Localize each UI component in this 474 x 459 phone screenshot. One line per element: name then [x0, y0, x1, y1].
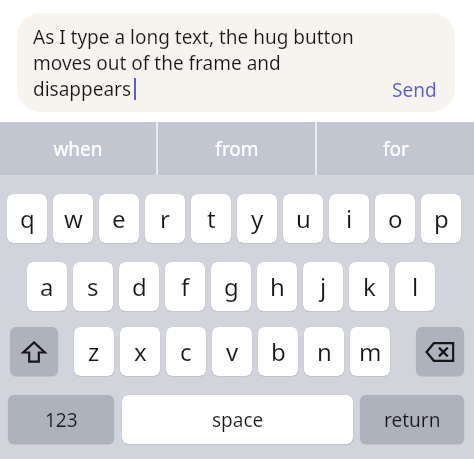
- staticText: f: [181, 270, 190, 303]
- button[interactable]: x: [120, 327, 160, 376]
- staticText: n: [317, 335, 332, 368]
- button[interactable]: l: [395, 262, 435, 311]
- button[interactable]: a: [27, 262, 67, 311]
- staticText: Send: [392, 77, 437, 103]
- button[interactable]: k: [349, 262, 389, 311]
- button[interactable]: i: [329, 194, 369, 243]
- button[interactable]: g: [211, 262, 251, 311]
- staticText: x: [134, 335, 147, 368]
- staticText: g: [224, 270, 239, 303]
- staticText: w: [64, 202, 83, 235]
- staticText: m: [359, 335, 382, 368]
- button[interactable]: d: [119, 262, 159, 311]
- staticText: a: [40, 270, 54, 303]
- staticText: o: [388, 202, 403, 235]
- staticText: l: [412, 270, 419, 303]
- button[interactable]: space: [122, 395, 353, 444]
- staticText: t: [207, 202, 216, 235]
- staticText: As I type a long text, the hug button: [33, 24, 354, 50]
- staticText: r: [160, 202, 170, 235]
- button[interactable]: when: [0, 122, 156, 175]
- button[interactable]: 123: [8, 395, 114, 444]
- button[interactable]: m: [350, 327, 390, 376]
- staticText: s: [87, 270, 99, 303]
- button[interactable]: n: [304, 327, 344, 376]
- button[interactable]: h: [257, 262, 297, 311]
- button[interactable]: j: [303, 262, 343, 311]
- button[interactable]: y: [237, 194, 277, 243]
- staticText: v: [226, 335, 239, 368]
- button[interactable]: c: [166, 327, 206, 376]
- staticText: space: [212, 407, 264, 433]
- staticText: y: [251, 202, 264, 235]
- staticText: i: [346, 202, 353, 235]
- button[interactable]: r: [145, 194, 185, 243]
- button[interactable]: t: [191, 194, 231, 243]
- staticText: d: [132, 270, 147, 303]
- button[interactable]: Shift: [10, 327, 58, 376]
- staticText: b: [271, 335, 286, 368]
- staticText: disappears: [33, 76, 132, 102]
- button[interactable]: from: [158, 122, 315, 175]
- staticText: q: [20, 202, 35, 235]
- button[interactable]: v: [212, 327, 252, 376]
- staticText: for: [383, 136, 409, 162]
- staticText: j: [320, 270, 327, 303]
- button[interactable]: p: [421, 194, 461, 243]
- staticText: u: [296, 202, 311, 235]
- button[interactable]: z: [74, 327, 114, 376]
- staticText: return: [384, 407, 441, 433]
- button[interactable]: b: [258, 327, 298, 376]
- staticText: 123: [45, 407, 78, 433]
- button[interactable]: for: [317, 122, 474, 175]
- button[interactable]: q: [7, 194, 47, 243]
- staticText: k: [363, 270, 376, 303]
- button[interactable]: As I type a long text, the hug button: [17, 13, 455, 112]
- button[interactable]: o: [375, 194, 415, 243]
- staticText: when: [53, 136, 103, 162]
- staticText: e: [112, 202, 126, 235]
- button[interactable]: u: [283, 194, 323, 243]
- button[interactable]: Send: [386, 74, 443, 106]
- staticText: h: [270, 270, 285, 303]
- button[interactable]: Delete: [416, 327, 464, 376]
- button[interactable]: s: [73, 262, 113, 311]
- staticText: p: [434, 202, 449, 235]
- staticText: z: [88, 335, 100, 368]
- button[interactable]: return: [360, 395, 464, 444]
- button[interactable]: w: [53, 194, 93, 243]
- staticText: c: [180, 335, 192, 368]
- staticText: from: [215, 136, 259, 162]
- staticText: moves out of the frame and: [33, 50, 281, 76]
- button[interactable]: e: [99, 194, 139, 243]
- button[interactable]: f: [165, 262, 205, 311]
